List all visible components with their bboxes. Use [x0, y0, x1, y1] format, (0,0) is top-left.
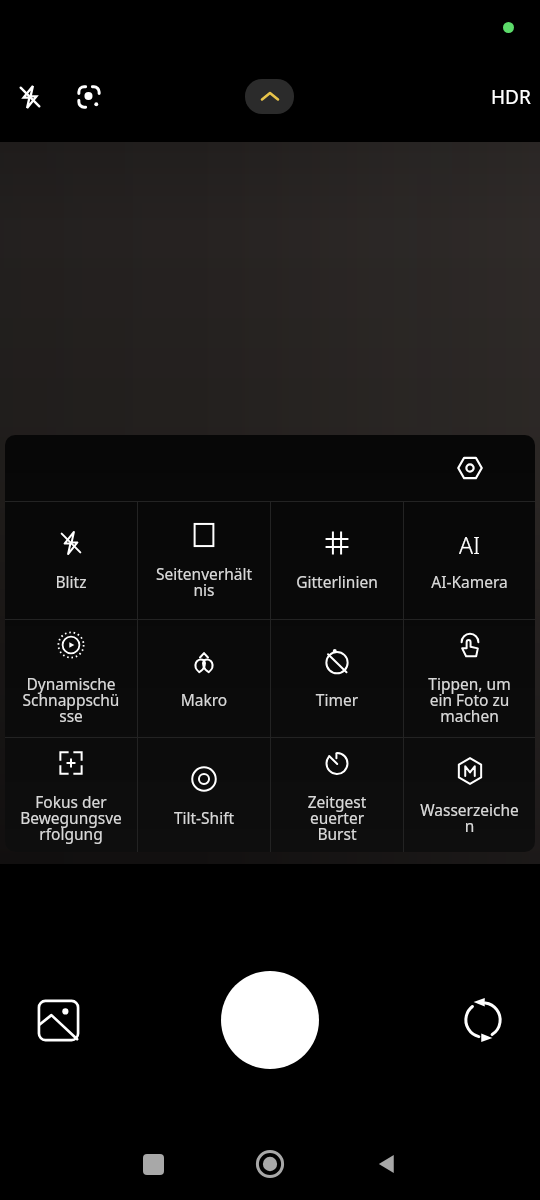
staticText: Zeitgest euerter Burst: [271, 791, 403, 844]
button[interactable]: Shutter: [221, 971, 319, 1069]
button[interactable]: Settings: [445, 443, 495, 493]
button[interactable]: Tippen, um ein Foto zu machen: [404, 620, 535, 737]
button[interactable]: AI: [404, 502, 535, 619]
button[interactable]: Flash off: [5, 72, 55, 122]
staticText: Wasserzeiche n: [404, 799, 535, 836]
staticText: Dynamische Schnappschü sse: [5, 673, 137, 726]
button[interactable]: Gitterlinien: [271, 502, 403, 619]
staticText: Tippen, um ein Foto zu machen: [404, 673, 535, 726]
staticText: Blitz: [5, 571, 137, 592]
staticText: Seitenverhält nis: [138, 563, 270, 600]
staticText: Fokus der Bewegungsve rfolgung: [5, 791, 137, 844]
staticText: Gitterlinien: [271, 571, 403, 592]
button[interactable]: Recents: [123, 1134, 183, 1194]
button[interactable]: HDR: [481, 72, 540, 122]
staticText: Makro: [138, 689, 270, 710]
button[interactable]: Lens: [64, 72, 114, 122]
button[interactable]: Zeitgest euerter Burst: [271, 738, 403, 852]
button[interactable]: Gallery: [26, 988, 90, 1052]
staticText: AI-Kamera: [404, 571, 535, 592]
button[interactable]: Fokus der Bewegungsve rfolgung: [5, 738, 137, 852]
staticText: Timer: [271, 689, 403, 710]
button[interactable]: Home: [240, 1134, 300, 1194]
staticText: HDR: [491, 84, 531, 110]
button[interactable]: Makro: [138, 620, 270, 737]
button[interactable]: Wasserzeiche n: [404, 738, 535, 852]
button[interactable]: Switch camera: [451, 988, 515, 1052]
button[interactable]: Blitz: [5, 502, 137, 619]
button[interactable]: Seitenverhält nis: [138, 502, 270, 619]
button[interactable]: Dynamische Schnappschü sse: [5, 620, 137, 737]
staticText: Tilt-Shift: [138, 807, 270, 828]
button[interactable]: Back: [357, 1134, 417, 1194]
button[interactable]: Tilt-Shift: [138, 738, 270, 852]
button[interactable]: More settings: [245, 79, 294, 114]
button[interactable]: Timer: [271, 620, 403, 737]
staticText: AI: [459, 529, 481, 557]
